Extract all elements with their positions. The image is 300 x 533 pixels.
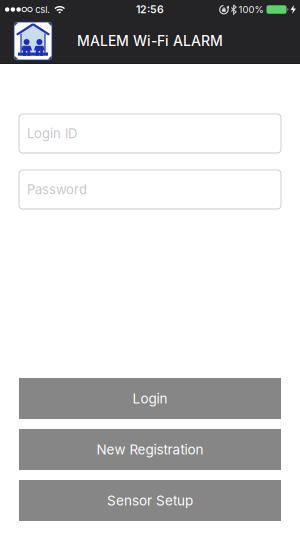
staticText: Sensor Setup [107, 492, 193, 509]
button[interactable]: New Registration [19, 429, 281, 470]
button[interactable]: Login ID [19, 114, 281, 153]
staticText: MALEM Wi-Fi ALARM [77, 32, 223, 49]
staticText: 12:56 [136, 3, 164, 16]
staticText: csl. [35, 4, 50, 15]
staticText: 100% [238, 4, 263, 15]
button[interactable]: Sensor Setup [19, 480, 281, 521]
staticText: New Registration [96, 441, 203, 458]
staticText: Login ID [27, 126, 77, 141]
staticText: Login [132, 390, 167, 407]
staticText: Password [27, 182, 87, 197]
button[interactable]: Login [19, 378, 281, 419]
button[interactable]: Password [19, 170, 281, 209]
